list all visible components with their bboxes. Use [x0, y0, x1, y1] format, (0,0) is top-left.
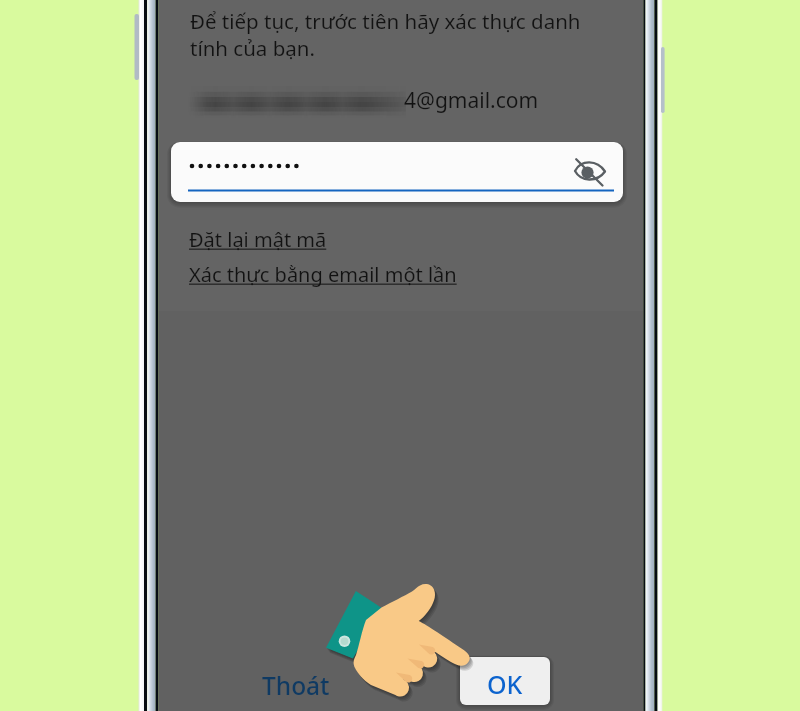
staticText: 4@gmail.com — [404, 86, 539, 115]
button[interactable]: Đặt lại mật mã — [189, 226, 327, 253]
button[interactable]: Show password — [573, 155, 607, 189]
staticText: OK — [487, 667, 523, 701]
button[interactable]: Thoát — [262, 669, 330, 702]
button[interactable]: Xác thực bằng email một lần — [189, 261, 457, 288]
staticText: Để tiếp tục, trước tiên hãy xác thực dan… — [190, 7, 581, 62]
button[interactable]: Show password — [171, 142, 623, 202]
button[interactable]: OK — [460, 657, 550, 705]
